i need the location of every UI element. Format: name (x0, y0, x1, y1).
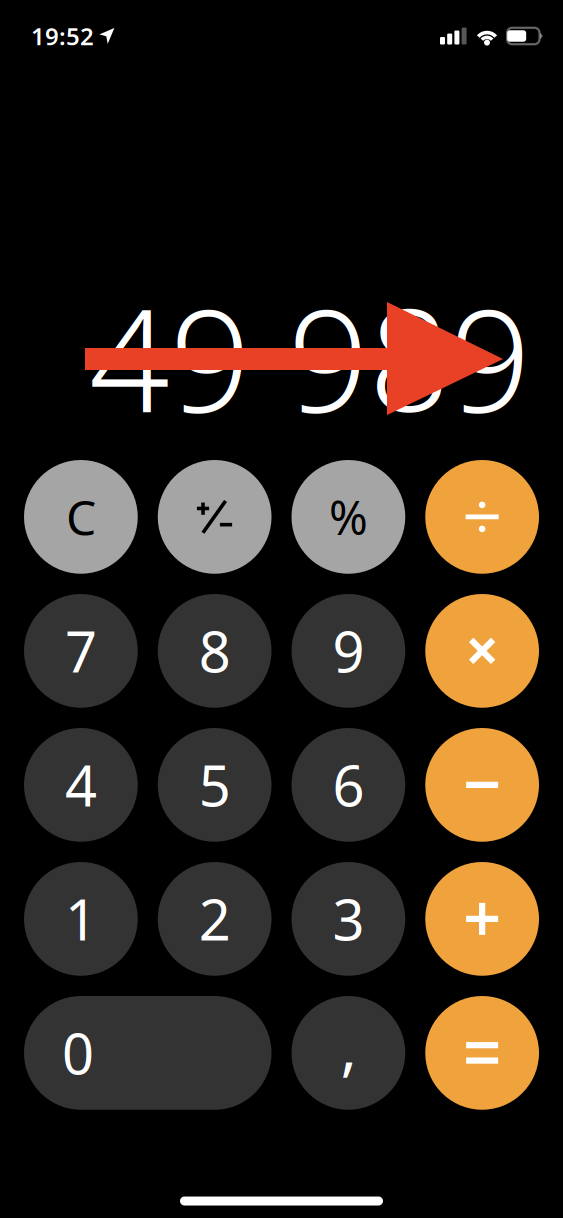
button[interactable]: 4 (24, 728, 138, 842)
staticText: 6 (332, 748, 364, 822)
button[interactable]: Equals (425, 996, 539, 1110)
staticText: C (66, 485, 96, 549)
button[interactable]: 8 (158, 594, 272, 708)
button[interactable]: C (24, 460, 138, 574)
button[interactable]: 3 (291, 862, 405, 976)
staticText: 19:52 (31, 20, 94, 52)
button[interactable]: , (291, 996, 405, 1110)
button[interactable]: 6 (291, 728, 405, 842)
staticText: , (340, 1005, 356, 1087)
button[interactable]: 2 (158, 862, 272, 976)
button[interactable]: 7 (24, 594, 138, 708)
staticText: 4 (65, 748, 97, 822)
button[interactable]: % (291, 460, 405, 574)
staticText: 8 (199, 614, 231, 688)
button[interactable]: Divide (425, 460, 539, 574)
button[interactable]: 0 (24, 996, 271, 1110)
staticText: 0 (62, 1016, 94, 1090)
button[interactable]: Plus or minus (158, 460, 272, 574)
button[interactable]: 1 (24, 862, 138, 976)
staticText: 7 (65, 614, 97, 688)
staticText: 49 989 (89, 263, 531, 451)
staticText: % (329, 486, 368, 548)
staticText: 1 (65, 882, 97, 956)
button[interactable]: 9 (291, 594, 405, 708)
button[interactable]: Multiply (425, 594, 539, 708)
staticText: 3 (332, 882, 364, 956)
staticText: 5 (199, 748, 231, 822)
button[interactable]: 5 (158, 728, 272, 842)
button[interactable]: Plus (425, 862, 539, 976)
staticText: 9 (332, 614, 364, 688)
button[interactable]: Minus (425, 728, 539, 842)
staticText: 2 (199, 882, 231, 956)
